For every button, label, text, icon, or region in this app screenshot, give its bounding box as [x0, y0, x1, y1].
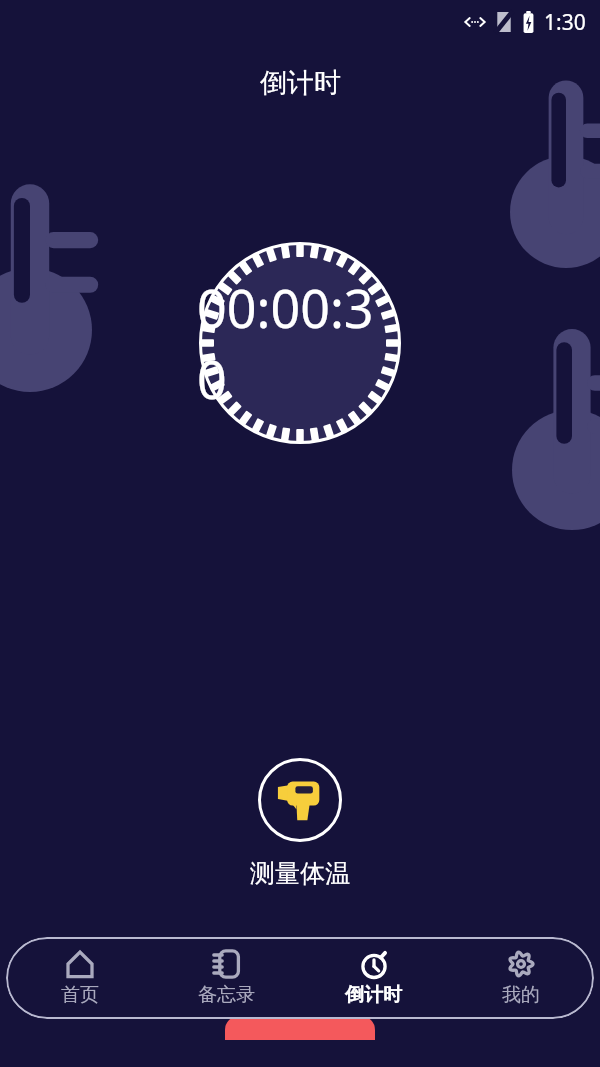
- staticText: 1:30: [544, 8, 586, 37]
- staticText: 首页: [61, 983, 99, 1007]
- staticText: 倒计时: [260, 66, 341, 100]
- staticText: 测量体温: [250, 858, 350, 889]
- button[interactable]: 测量体温: [200, 758, 400, 889]
- button[interactable]: 备忘录: [153, 945, 300, 1011]
- staticText: 备忘录: [198, 983, 255, 1007]
- button[interactable]: Timer dial: [197, 240, 403, 446]
- staticText: 00:00:30: [197, 272, 403, 414]
- button[interactable]: 首页: [6, 945, 153, 1011]
- staticText: 倒计时: [345, 983, 402, 1007]
- button[interactable]: 我的: [447, 945, 594, 1011]
- button[interactable]: 倒计时: [300, 945, 447, 1011]
- staticText: 我的: [502, 983, 540, 1007]
